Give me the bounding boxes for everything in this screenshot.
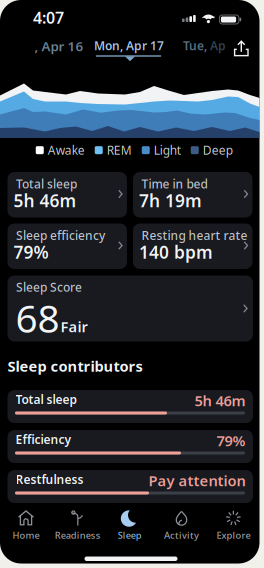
staticText: Restfulness — [15, 471, 83, 487]
button[interactable]: Mon, Apr 17 — [0, 0, 264, 70]
staticText: Activity — [164, 529, 199, 541]
staticText: 5h 46m — [194, 391, 245, 410]
staticText: Fair — [60, 317, 87, 336]
staticText: Home — [12, 529, 39, 541]
button[interactable]: Total sleep — [7, 172, 127, 217]
button[interactable]: Sleep efficiency — [7, 223, 127, 269]
staticText: , Apr 16 — [34, 37, 83, 55]
button[interactable]: , Apr 16 — [0, 0, 49, 18]
button[interactable]: Sleep Score — [7, 275, 253, 341]
staticText: Mon, Apr 17 — [94, 38, 164, 53]
staticText: Resting heart rate — [141, 227, 247, 243]
staticText: 79% — [216, 431, 245, 450]
button[interactable]: Restfulness — [7, 470, 253, 503]
button[interactable]: Home — [0, 509, 52, 542]
staticText: Readiness — [55, 529, 101, 541]
button[interactable]: Explore — [207, 509, 259, 542]
staticText: Sleep efficiency — [16, 227, 105, 243]
staticText: Total sleep — [16, 176, 77, 192]
staticText: 5h 46m — [13, 189, 76, 212]
staticText: 79% — [13, 240, 48, 263]
button[interactable]: Time in bed — [133, 172, 252, 217]
staticText: Tue, — [183, 38, 207, 53]
button[interactable]: Total sleep — [7, 390, 253, 423]
staticText: Efficiency — [15, 431, 71, 447]
button[interactable]: Activity — [155, 509, 207, 542]
staticText: Sleep contributors — [7, 356, 142, 376]
button[interactable]: Efficiency — [7, 430, 253, 463]
staticText: REM — [107, 142, 132, 158]
staticText: Sleep Score — [16, 279, 82, 295]
staticText: Pay attention — [148, 471, 245, 490]
staticText: 68 — [15, 292, 59, 343]
staticText: Awake — [48, 142, 85, 158]
staticText: Ap — [207, 38, 226, 53]
staticText: Time in bed — [141, 176, 207, 192]
button[interactable]: Sleep — [104, 509, 156, 542]
staticText: 7h 19m — [139, 189, 202, 212]
staticText: Explore — [216, 529, 250, 541]
staticText: Deep — [203, 142, 233, 158]
button[interactable]: Tue, — [0, 0, 43, 16]
button[interactable]: Readiness — [52, 509, 104, 542]
button[interactable]: Resting heart rate — [133, 223, 252, 269]
staticText: 4:07 — [33, 7, 64, 28]
staticText: Sleep — [118, 529, 142, 541]
staticText: Total sleep — [15, 391, 77, 407]
button[interactable] — [0, 0, 264, 70]
staticText: Light — [154, 142, 181, 158]
staticText: 140 bpm — [139, 240, 213, 263]
